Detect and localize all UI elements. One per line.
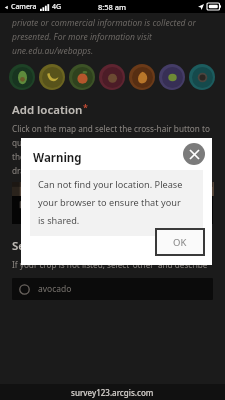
staticText: dragging the pin.: [12, 165, 79, 176]
staticText: OK: [173, 236, 187, 249]
staticText: 8:58 am: [98, 2, 127, 12]
button[interactable]: Map: [12, 182, 213, 224]
staticText: the pin on the crop location by clicking…: [12, 151, 211, 162]
staticText: quickly 'find my location' or search for…: [12, 137, 213, 148]
button[interactable]: avocado: [12, 278, 213, 300]
staticText: If your crop is not listed, select 'othe…: [12, 259, 213, 270]
button[interactable]: crop icon: [39, 64, 65, 90]
staticText: your browser to ensure that your locatio…: [38, 196, 197, 209]
staticText: presented. For more information visit: [12, 31, 152, 43]
staticText: une.edu.au/webapps.: [12, 45, 94, 57]
staticText: avocado: [38, 283, 72, 295]
button[interactable]: crop icon: [159, 64, 185, 90]
staticText: Can not find your location. Please check: [38, 178, 197, 191]
staticText: Camera: [11, 2, 37, 12]
staticText: private or commercial information is col…: [12, 17, 196, 29]
staticText: Select tree crop: [12, 238, 100, 254]
button[interactable]: crop icon: [189, 64, 215, 90]
button[interactable]: OK: [155, 228, 205, 256]
button[interactable]: crop icon: [69, 64, 95, 90]
staticText: is shared.: [38, 214, 80, 227]
staticText: *: [83, 101, 88, 113]
button[interactable]: Find my location: [20, 202, 36, 218]
button[interactable]: crop icon: [99, 64, 125, 90]
staticText: survey123.arcgis.com: [71, 387, 154, 398]
staticText: 4G: [52, 2, 62, 12]
button[interactable]: crop icon: [129, 64, 155, 90]
staticText: Warning: [33, 150, 82, 166]
button[interactable]: crop icon: [9, 64, 35, 90]
staticText: Add location: [12, 102, 83, 118]
button[interactable]: Close: [183, 143, 205, 165]
staticText: Click on the map and select the cross-ha…: [12, 123, 210, 134]
